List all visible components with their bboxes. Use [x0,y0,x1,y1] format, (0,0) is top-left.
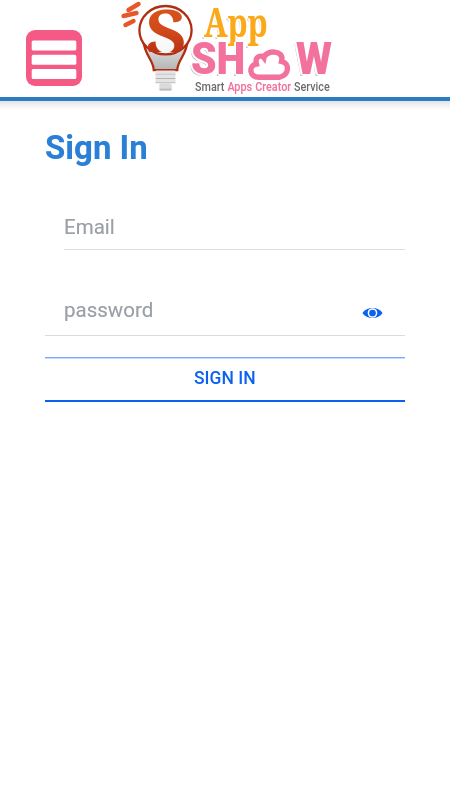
staticText: App [206,0,270,48]
staticText: Email [64,215,115,239]
staticText: SH [190,32,245,84]
staticText: SH [191,31,246,83]
staticText: SH [191,35,246,87]
staticText: App [202,0,266,50]
staticText: W [296,31,333,83]
staticText: SH [193,33,248,85]
staticText: Smart [195,80,227,94]
staticText: App [205,0,269,47]
staticText: SH [192,32,247,84]
staticText: SH [191,33,246,85]
staticText: App [204,0,268,50]
button[interactable]: Menu [26,30,82,86]
staticText: App [204,0,268,46]
staticText: password [64,298,154,322]
staticText: Service [294,80,330,94]
button[interactable]: SIGN IN [45,357,405,413]
staticText: W [296,33,333,85]
staticText: S [146,0,187,52]
staticText: SH [192,34,247,86]
staticText: SH [189,35,244,87]
staticText: W [295,32,332,84]
staticText: Sign In [45,128,148,167]
button[interactable]: Show password [355,296,389,330]
staticText: W [294,33,331,85]
staticText: W [297,34,334,86]
staticText: SH [189,33,244,85]
staticText: W [294,35,331,87]
staticText: W [296,35,333,87]
staticText: W [297,32,334,84]
staticText: App [203,0,267,47]
staticText: SIGN IN [194,368,256,389]
staticText: App [205,0,269,49]
staticText: Apps [227,80,255,94]
staticText: App [203,0,267,49]
staticText: App [204,0,268,48]
staticText: W [298,33,335,85]
staticText: Creator [255,80,294,94]
staticText: W [295,34,332,86]
staticText: App [202,0,266,48]
staticText: SH [190,34,245,86]
